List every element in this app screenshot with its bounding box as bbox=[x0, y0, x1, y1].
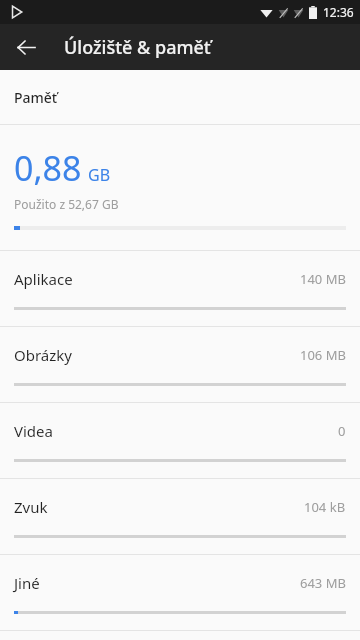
staticText: Zvuk bbox=[14, 497, 48, 517]
staticText: Videa bbox=[14, 421, 53, 441]
staticText: 106 MB bbox=[300, 346, 346, 364]
staticText: 12:36 bbox=[323, 4, 354, 20]
button[interactable]: Aplikace bbox=[0, 251, 360, 326]
button[interactable]: Jiné bbox=[0, 555, 360, 630]
staticText: 643 MB bbox=[300, 574, 346, 592]
staticText: 104 kB bbox=[304, 498, 346, 516]
staticText: GB bbox=[88, 164, 111, 186]
staticText: Použito z 52,67 GB bbox=[14, 196, 119, 212]
staticText: Jiné bbox=[14, 573, 40, 593]
staticText: Aplikace bbox=[14, 269, 73, 289]
staticText: Úložiště & paměť bbox=[64, 35, 211, 60]
staticText: 140 MB bbox=[300, 270, 346, 288]
staticText: Paměť bbox=[14, 88, 58, 107]
button[interactable]: Videa bbox=[0, 403, 360, 478]
staticText: Obrázky bbox=[14, 345, 72, 365]
staticText: 0,88 bbox=[14, 145, 82, 191]
staticText: 0 bbox=[338, 422, 346, 440]
button[interactable]: Back bbox=[6, 27, 46, 67]
button[interactable]: Obrázky bbox=[0, 327, 360, 402]
button[interactable]: Zvuk bbox=[0, 479, 360, 554]
button[interactable]: 0,88 bbox=[0, 125, 360, 250]
